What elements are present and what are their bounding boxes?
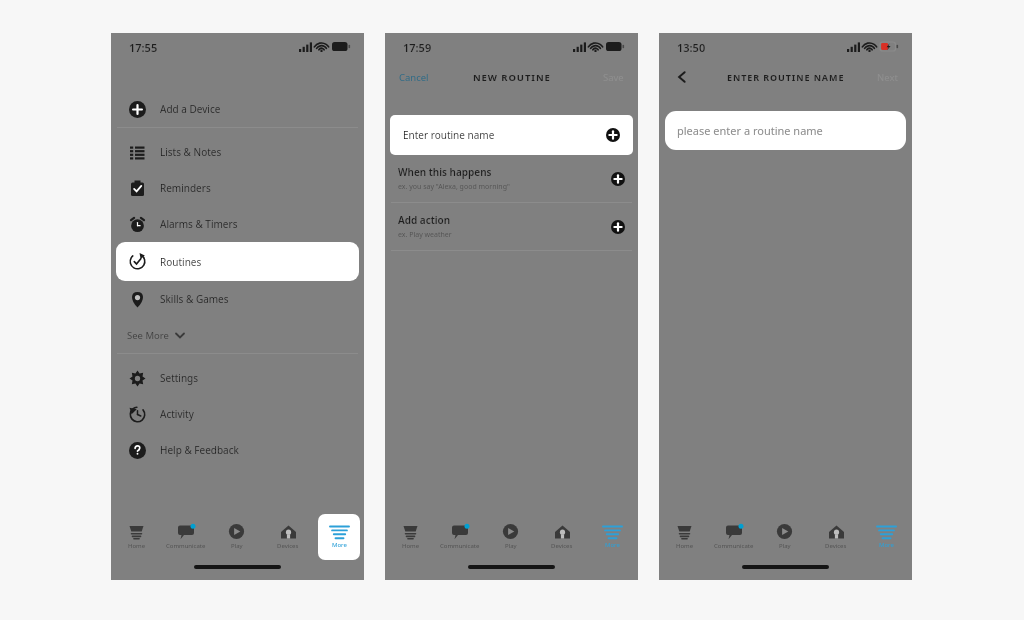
staticText: More [605, 541, 620, 549]
staticText: 17:59 [403, 40, 432, 55]
staticText: Communicate [714, 542, 754, 550]
button[interactable]: Enter routine name [390, 115, 633, 155]
staticText: Devices [551, 542, 573, 550]
staticText: 17:55 [129, 40, 158, 55]
staticText: Reminders [160, 181, 211, 195]
staticText: ex. Play weather [398, 230, 452, 240]
staticText: Play [231, 542, 243, 550]
button[interactable]: Alarms & Timers [111, 206, 364, 242]
staticText: More [332, 541, 347, 549]
button[interactable]: Add action [385, 203, 638, 250]
staticText: ex. you say "Alexa, good morning" [398, 182, 510, 192]
button[interactable]: Communicate [435, 514, 485, 560]
button[interactable]: Add a Device [111, 91, 364, 127]
staticText: Add a Device [160, 102, 221, 116]
button[interactable]: Help & Feedback [111, 432, 364, 468]
staticText: Cancel [399, 71, 429, 84]
button[interactable]: Home [111, 514, 161, 560]
staticText: 13:50 [677, 40, 706, 55]
staticText: Settings [160, 371, 199, 385]
staticText: Alarms & Timers [160, 217, 238, 231]
button[interactable]: Activity [111, 396, 364, 432]
staticText: please enter a routine name [677, 123, 823, 138]
staticText: Lists & Notes [160, 145, 222, 159]
button[interactable]: Settings [111, 360, 364, 396]
staticText: Communicate [166, 542, 206, 550]
button[interactable]: See More [111, 317, 364, 353]
button[interactable]: Cancel [395, 68, 433, 87]
staticText: Save [603, 71, 624, 84]
staticText: Play [505, 542, 517, 550]
staticText: Add action [398, 213, 451, 227]
staticText: Home [676, 542, 694, 550]
staticText: Home [402, 542, 420, 550]
staticText: Devices [277, 542, 299, 550]
button[interactable]: Home [385, 514, 435, 560]
staticText: ENTER ROUTINE NAME [727, 71, 845, 83]
button[interactable]: Play [211, 514, 262, 560]
staticText: NEW ROUTINE [473, 71, 551, 84]
button[interactable]: Play [759, 514, 810, 560]
staticText: Routines [160, 255, 202, 269]
button[interactable]: Devices [536, 514, 587, 560]
button[interactable]: More [861, 514, 912, 560]
button[interactable]: Communicate [709, 514, 759, 560]
button[interactable]: please enter a routine name [665, 111, 906, 150]
button[interactable]: Play [485, 514, 536, 560]
button[interactable]: Devices [810, 514, 861, 560]
staticText: See More [127, 329, 169, 342]
button[interactable]: When this happens [385, 155, 638, 202]
staticText: Activity [160, 407, 194, 421]
button[interactable]: Routines [116, 242, 359, 281]
button[interactable]: Communicate [161, 514, 211, 560]
button[interactable]: Home [659, 514, 709, 560]
button[interactable]: Next [873, 68, 902, 87]
button[interactable]: More [587, 514, 638, 560]
staticText: Skills & Games [160, 292, 229, 306]
button[interactable]: More [318, 514, 360, 560]
staticText: Help & Feedback [160, 443, 239, 457]
staticText: Home [128, 542, 146, 550]
button[interactable]: Skills & Games [111, 281, 364, 317]
staticText: Play [779, 542, 791, 550]
staticText: More [879, 541, 894, 549]
button[interactable]: Back [673, 68, 691, 86]
staticText: Enter routine name [403, 128, 495, 142]
staticText: Communicate [440, 542, 480, 550]
button[interactable]: Reminders [111, 170, 364, 206]
staticText: Devices [825, 542, 847, 550]
staticText: When this happens [398, 165, 492, 179]
button[interactable]: Devices [262, 514, 313, 560]
button[interactable]: Save [599, 68, 628, 87]
staticText: Next [877, 71, 898, 84]
button[interactable]: Lists & Notes [111, 134, 364, 170]
